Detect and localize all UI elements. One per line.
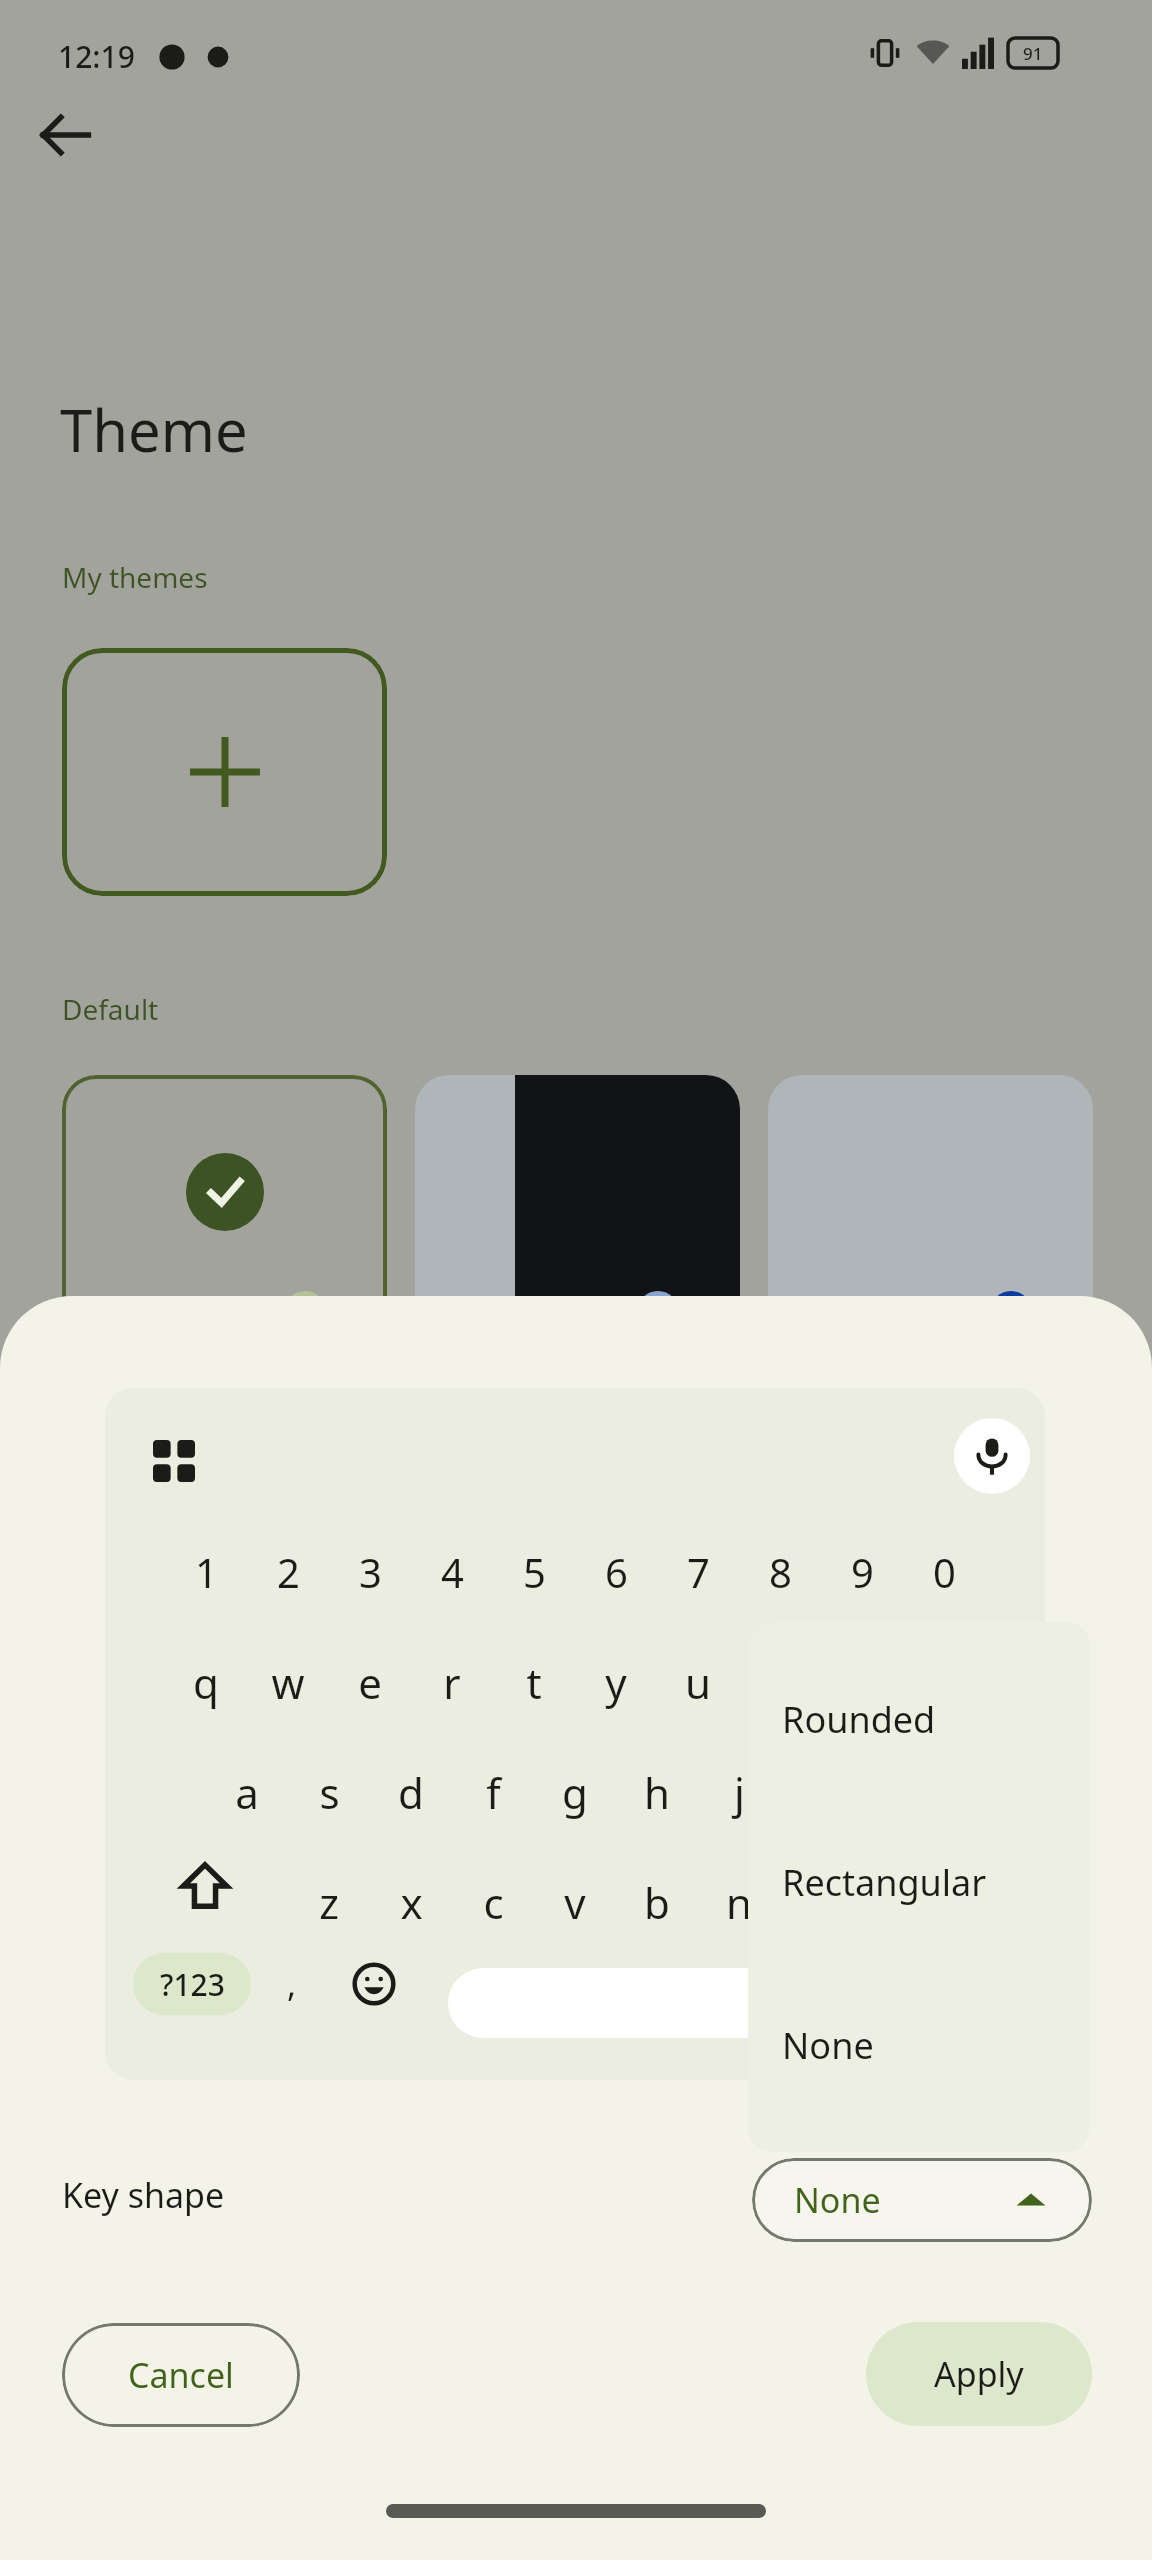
button[interactable]: 5 [493,1530,575,1614]
staticText: Apply [934,2351,1024,2397]
staticText: h [644,1764,670,1821]
staticText: q [193,1654,219,1711]
button[interactable]: d [370,1750,452,1834]
button[interactable]: Light theme [768,1075,1093,1345]
button[interactable]: t [493,1640,575,1724]
button[interactable]: w [247,1640,329,1724]
button[interactable]: s [288,1750,370,1834]
button[interactable]: g [534,1750,616,1834]
button[interactable]: Shift [169,1850,241,1922]
staticText: d [398,1764,424,1821]
button[interactable]: a [206,1750,288,1834]
button[interactable]: n [698,1860,780,1944]
staticText: None [782,2021,874,2070]
staticText: Default [62,990,159,1028]
button[interactable]: z [288,1860,370,1944]
staticText: m [801,1874,841,1931]
staticText: ?123 [160,1964,225,2005]
staticText: Rounded [782,1695,936,1744]
staticText: t [526,1654,542,1711]
button[interactable]: 1 [165,1530,247,1614]
staticText: 7 [687,1545,710,1599]
button[interactable]: Default theme, selected [62,1075,387,1345]
button[interactable]: Emoji [339,1953,409,2015]
staticText: c [483,1874,504,1931]
staticText: u [685,1654,711,1711]
button[interactable]: q [165,1640,247,1724]
button[interactable]: Rectangular [748,1827,1090,1937]
staticText: 12:19 [58,36,135,77]
button[interactable]: ?123 [133,1953,251,2015]
button[interactable]: Add theme [62,648,387,896]
button[interactable]: i [739,1640,821,1724]
staticText: z [319,1874,339,1931]
button[interactable]: x [370,1860,452,1944]
staticText: 91 [1023,42,1043,65]
staticText: w [271,1654,305,1711]
staticText: 8 [769,1545,792,1599]
staticText: y [605,1654,627,1711]
button[interactable]: v [534,1860,616,1944]
button[interactable]: Cancel [62,2323,300,2427]
button[interactable]: , [257,1953,327,2015]
staticText: n [726,1874,752,1931]
button[interactable]: j [698,1750,780,1834]
staticText: s [319,1764,340,1821]
staticText: Rectangular [782,1858,987,1907]
button[interactable]: 9 [821,1530,903,1614]
staticText: v [564,1874,586,1931]
button[interactable]: Apply [866,2322,1092,2426]
button[interactable]: 2 [247,1530,329,1614]
button[interactable]: 4 [411,1530,493,1614]
button[interactable]: c [452,1860,534,1944]
staticText: 3 [359,1545,382,1599]
staticText: Cancel [128,2352,234,2398]
button[interactable]: f [452,1750,534,1834]
button[interactable]: h [616,1750,698,1834]
staticText: i [775,1654,786,1711]
staticText: None [794,2177,881,2223]
button[interactable]: Space [448,1968,1008,2038]
staticText: x [400,1874,423,1931]
button[interactable]: e [329,1640,411,1724]
staticText: e [358,1654,382,1711]
button[interactable]: 0 [903,1530,985,1614]
staticText: 9 [851,1545,874,1599]
button[interactable]: p [903,1640,985,1724]
staticText: Key shape [62,2172,225,2218]
staticText: Theme [60,390,248,469]
button[interactable]: 3 [329,1530,411,1614]
staticText: g [562,1764,588,1821]
staticText: 0 [933,1545,956,1599]
button[interactable]: Back [18,88,112,182]
button[interactable]: m [780,1860,862,1944]
button[interactable]: r [411,1640,493,1724]
staticText: f [486,1764,501,1821]
button[interactable]: y [575,1640,657,1724]
staticText: 1 [195,1545,218,1599]
button[interactable]: 8 [739,1530,821,1614]
staticText: r [443,1654,461,1711]
staticText: 2 [277,1545,300,1599]
button[interactable]: u [657,1640,739,1724]
button[interactable]: None [752,2158,1092,2242]
button[interactable]: Dark theme [415,1075,740,1345]
button[interactable]: None [748,1990,1090,2100]
button[interactable]: Rounded [748,1664,1090,1774]
button[interactable]: Keyboard layouts [143,1430,205,1492]
button[interactable]: 7 [657,1530,739,1614]
staticText: b [644,1874,670,1931]
button[interactable]: 6 [575,1530,657,1614]
staticText: j [734,1764,745,1821]
button[interactable]: o [821,1640,903,1724]
button[interactable]: Voice input [954,1418,1030,1494]
staticText: , [287,1961,297,2007]
staticText: 6 [605,1545,628,1599]
staticText: p [931,1654,957,1711]
button[interactable]: b [616,1860,698,1944]
